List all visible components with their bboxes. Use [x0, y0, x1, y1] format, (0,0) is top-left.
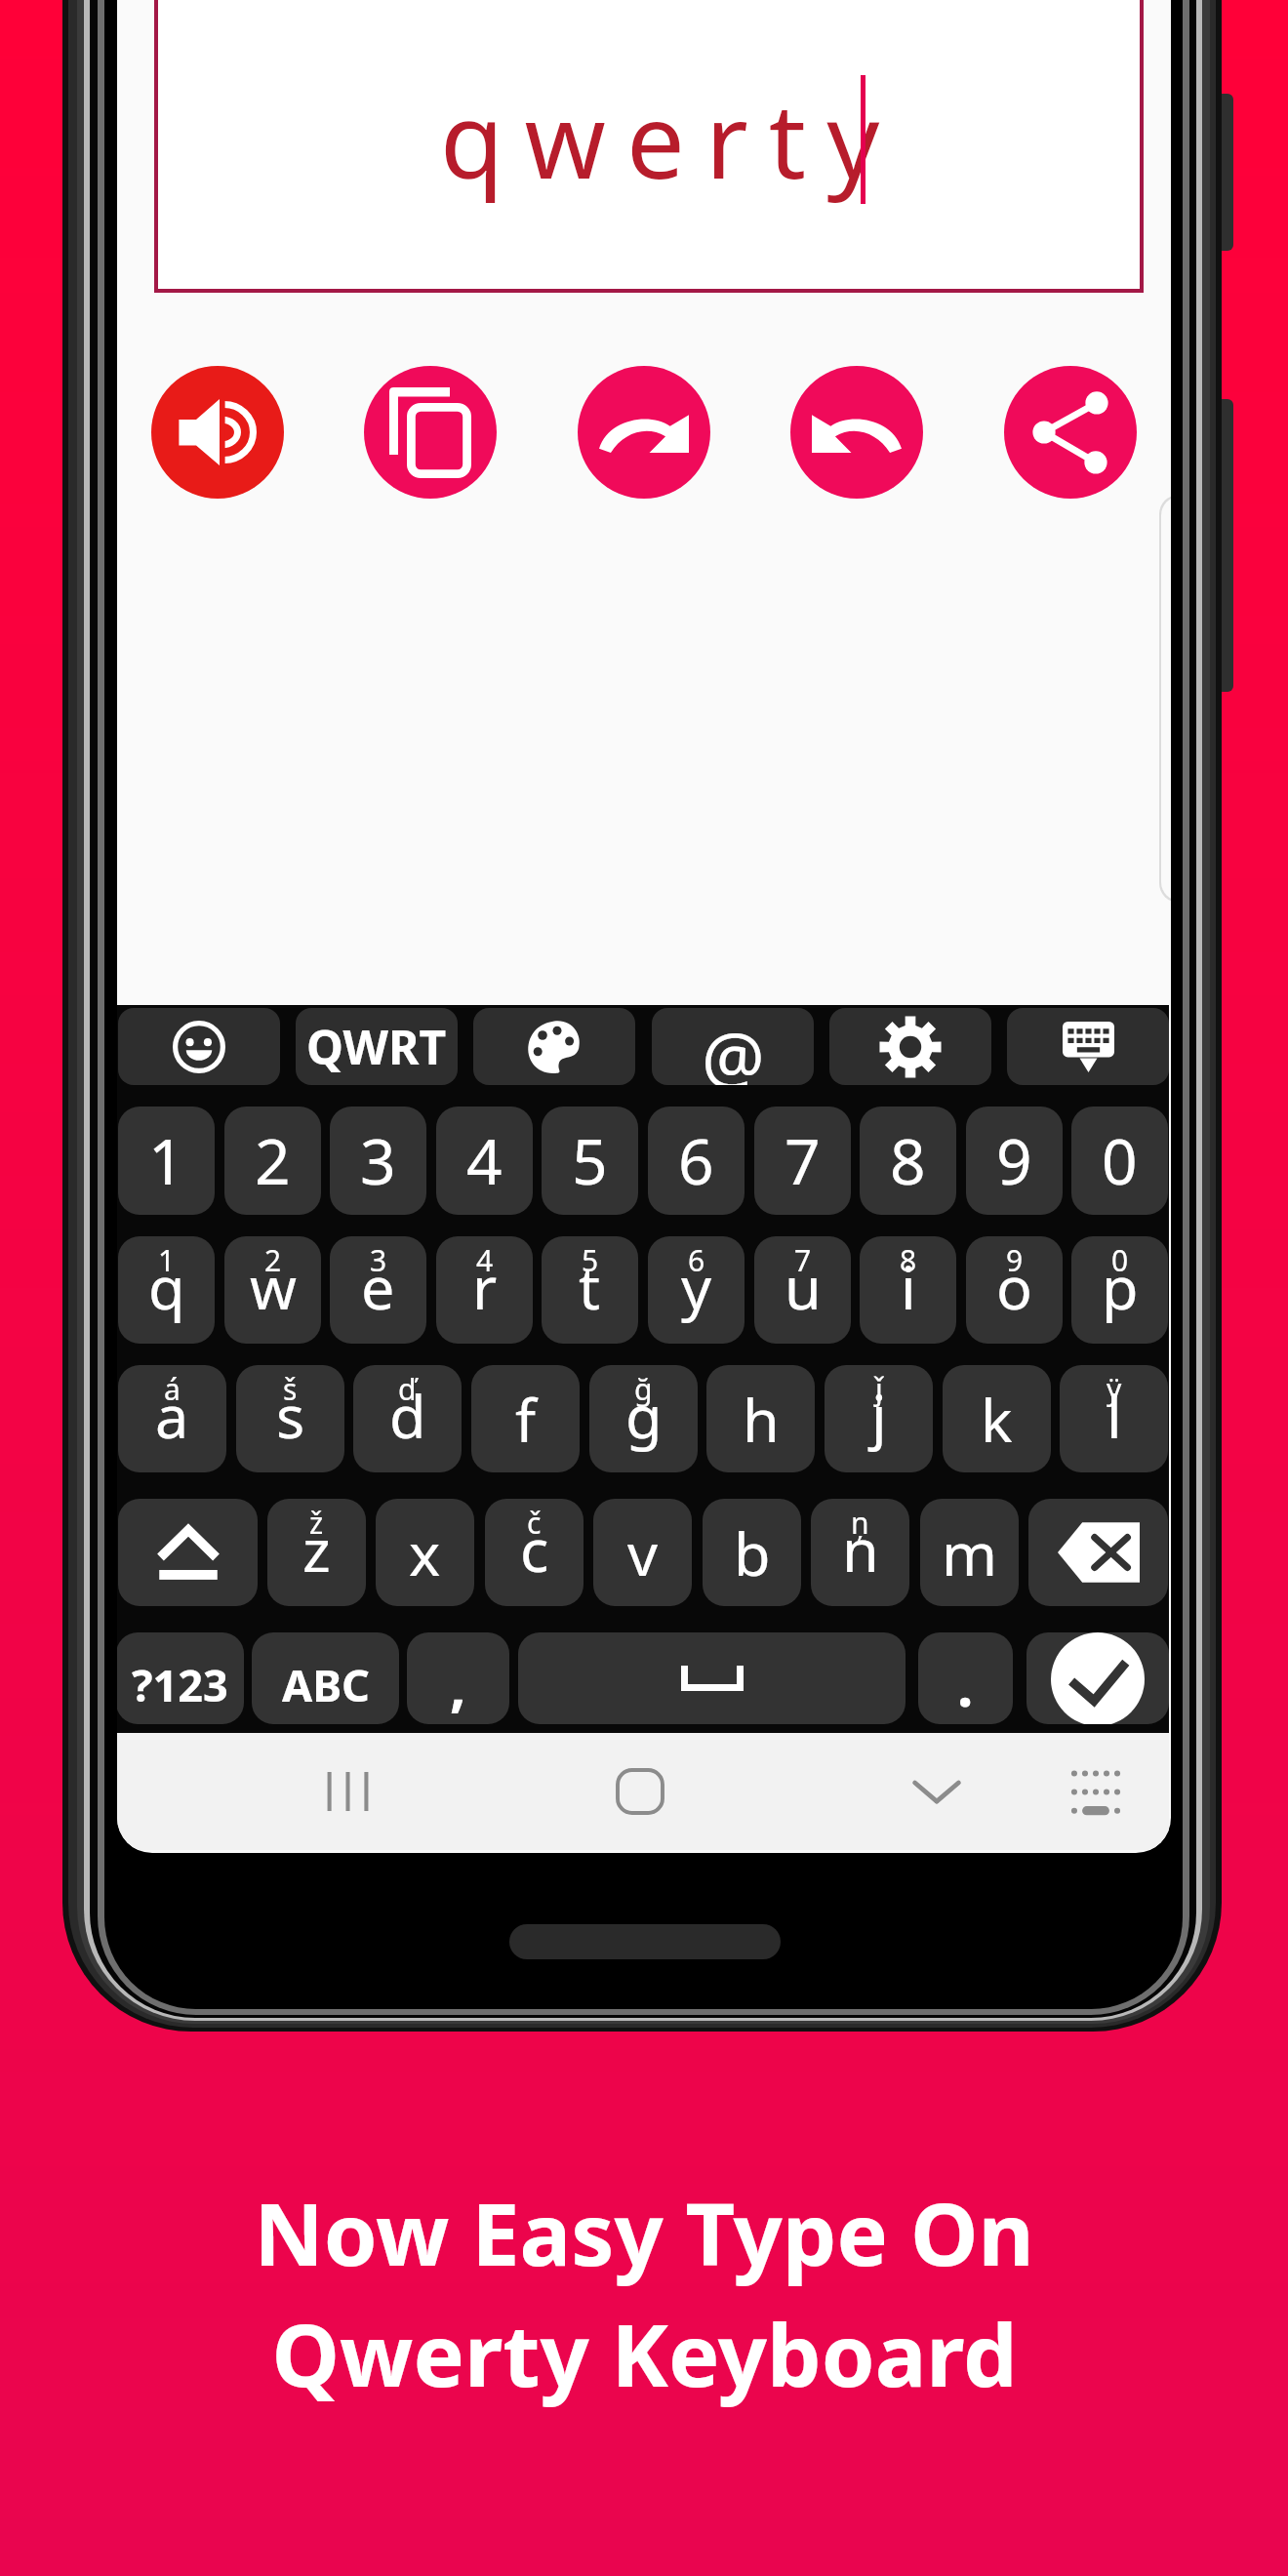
button[interactable]: 6 [648, 1107, 745, 1215]
staticText: d [389, 1375, 426, 1456]
staticText: 3 [370, 1240, 387, 1280]
button[interactable] [1026, 1632, 1169, 1724]
button[interactable]: 5 [542, 1236, 638, 1344]
staticText: . [957, 1646, 974, 1723]
button[interactable]: 3 [330, 1236, 426, 1344]
button[interactable]: 2 [224, 1107, 321, 1215]
button[interactable]: 9 [966, 1236, 1063, 1344]
staticText: ž [309, 1503, 324, 1543]
staticText: Qwerty Keyboard [271, 2295, 1018, 2412]
button[interactable]: ǰ [825, 1365, 933, 1472]
button[interactable]: Copy [364, 366, 497, 499]
button[interactable]: Switch keyboard [1047, 1743, 1145, 1840]
button[interactable]: 0 [1071, 1236, 1168, 1344]
button[interactable]: ?123 [117, 1632, 244, 1724]
button[interactable]: x [376, 1499, 474, 1606]
button[interactable]: 2 [224, 1236, 321, 1344]
button[interactable] [518, 1632, 906, 1724]
button[interactable]: 3 [330, 1107, 426, 1215]
button[interactable]: 0 [1071, 1107, 1168, 1215]
button[interactable]: At [652, 1008, 814, 1085]
button[interactable]: 8 [860, 1236, 956, 1344]
button[interactable] [1028, 1499, 1168, 1606]
button[interactable]: 4 [436, 1236, 533, 1344]
button[interactable]: ď [353, 1365, 462, 1472]
staticText: v [627, 1512, 658, 1593]
button[interactable]: ABC [252, 1632, 399, 1724]
button[interactable]: Share [1004, 366, 1137, 499]
button[interactable]: 1 [118, 1107, 215, 1215]
button[interactable]: Undo [790, 366, 923, 499]
button[interactable]: Speak [151, 366, 284, 499]
button[interactable]: ÿ [1060, 1365, 1168, 1472]
button[interactable]: k [943, 1365, 1051, 1472]
staticText: e [361, 1246, 395, 1327]
staticText: @ [702, 1008, 765, 1085]
staticText: 1 [148, 1118, 184, 1203]
staticText: ņ [851, 1503, 869, 1543]
button[interactable]: 9 [966, 1107, 1063, 1215]
staticText: 5 [572, 1118, 608, 1203]
staticText: š [283, 1369, 298, 1409]
staticText: á [164, 1369, 181, 1409]
button[interactable]: č [485, 1499, 584, 1606]
staticText: j [871, 1375, 887, 1456]
button[interactable]: 6 [648, 1236, 745, 1344]
button[interactable]: 7 [754, 1107, 851, 1215]
staticText: 0 [1111, 1240, 1129, 1280]
button[interactable]: Hide keyboard [1007, 1008, 1169, 1085]
staticText: qwerty [440, 68, 901, 209]
button[interactable]: Hide keyboard [888, 1743, 986, 1840]
button[interactable]: 8 [860, 1107, 956, 1215]
staticText: QWRT [306, 1015, 447, 1078]
button[interactable]: ņ [811, 1499, 909, 1606]
staticText: a [155, 1375, 189, 1456]
button[interactable]: m [920, 1499, 1019, 1606]
staticText: 9 [996, 1118, 1032, 1203]
staticText: k [981, 1379, 1013, 1460]
button[interactable]: Emoji [118, 1008, 280, 1085]
staticText: u [785, 1246, 822, 1327]
staticText: g [625, 1375, 663, 1456]
staticText: 7 [785, 1118, 821, 1203]
staticText: 9 [1006, 1240, 1024, 1280]
button[interactable]: f [471, 1365, 580, 1472]
button[interactable]: 4 [436, 1107, 533, 1215]
staticText: w [250, 1246, 297, 1327]
staticText: z [302, 1509, 331, 1590]
staticText: Now Easy Type On [254, 2174, 1034, 2291]
button[interactable]: 7 [754, 1236, 851, 1344]
button[interactable]: Settings [829, 1008, 991, 1085]
button[interactable]: Redo [578, 366, 710, 499]
button[interactable]: š [236, 1365, 344, 1472]
button[interactable]: Theme [473, 1008, 635, 1085]
staticText: f [515, 1379, 536, 1460]
button[interactable]: v [593, 1499, 692, 1606]
button[interactable]: ğ [589, 1365, 698, 1472]
button[interactable]: , [407, 1632, 509, 1724]
staticText: ?123 [132, 1655, 228, 1714]
button[interactable]: 1 [118, 1236, 215, 1344]
button[interactable]: á [118, 1365, 226, 1472]
staticText: 6 [688, 1240, 705, 1280]
button[interactable]: b [703, 1499, 801, 1606]
button[interactable]: . [918, 1632, 1013, 1724]
staticText: b [734, 1512, 771, 1593]
staticText: 3 [360, 1118, 396, 1203]
staticText: 4 [466, 1118, 503, 1203]
staticText: 2 [264, 1240, 282, 1280]
staticText: 8 [900, 1240, 917, 1280]
staticText: x [409, 1512, 441, 1593]
button[interactable]: Home [591, 1743, 689, 1840]
button[interactable]: h [706, 1365, 815, 1472]
staticText: 5 [582, 1240, 599, 1280]
button[interactable]: QWRT [296, 1008, 458, 1085]
staticText: 1 [158, 1240, 176, 1280]
button[interactable]: ž [267, 1499, 366, 1606]
button[interactable]: 5 [542, 1107, 638, 1215]
button[interactable] [118, 1499, 258, 1606]
staticText: p [1102, 1246, 1139, 1327]
staticText: 4 [476, 1240, 494, 1280]
button[interactable]: Recents [299, 1743, 396, 1840]
staticText: q [148, 1246, 185, 1327]
